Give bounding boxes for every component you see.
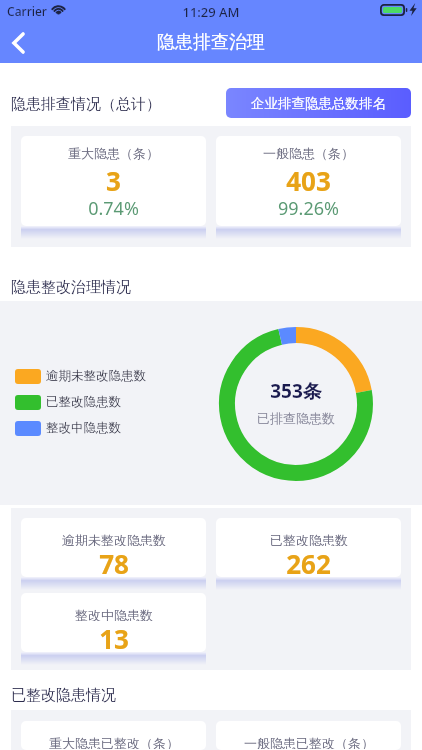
button[interactable]: 企业排查隐患总数排名	[226, 88, 411, 118]
staticText: 已整改隐患数	[270, 532, 348, 546]
staticText: 403	[286, 163, 331, 196]
staticText: 11:29 AM	[182, 3, 240, 21]
button[interactable]: 重大隐患已整改（条）	[21, 721, 206, 750]
staticText: 一般隐患（条）	[263, 145, 354, 161]
button[interactable]: 逾期未整改隐患数	[21, 518, 206, 577]
staticText: 重大隐患（条）	[68, 145, 159, 161]
staticText: 隐患排查情况（总计）	[11, 95, 161, 114]
staticText: 逾期未整改隐患数	[62, 532, 166, 546]
staticText: 已整改隐患情况	[11, 686, 116, 705]
button[interactable]: 已整改隐患数	[216, 518, 401, 577]
button[interactable]: 重大隐患（条）	[21, 136, 206, 226]
staticText: Carrier	[7, 3, 47, 19]
button[interactable]: 一般隐患（条）	[216, 136, 401, 226]
staticText: 已排查隐患数	[257, 410, 335, 426]
staticText: 重大隐患已整改（条）	[49, 735, 179, 749]
staticText: 已整改隐患数	[46, 394, 121, 410]
staticText: 一般隐患已整改（条）	[244, 735, 374, 749]
staticText: 353条	[270, 378, 322, 404]
staticText: 13	[99, 621, 129, 652]
staticText: 78	[99, 546, 129, 577]
staticText: 整改中隐患数	[46, 420, 121, 436]
staticText: 企业排查隐患总数排名	[251, 95, 386, 112]
staticText: 逾期未整改隐患数	[46, 368, 146, 384]
button[interactable]: 一般隐患已整改（条）	[216, 721, 401, 750]
staticText: 隐患排查治理	[157, 31, 265, 54]
button[interactable]: Back	[0, 22, 36, 63]
staticText: 0.74%	[88, 196, 139, 221]
staticText: 隐患整改治理情况	[11, 278, 131, 297]
staticText: 262	[286, 546, 331, 577]
staticText: 3	[106, 163, 121, 196]
button[interactable]: 整改中隐患数	[21, 593, 206, 652]
staticText: 整改中隐患数	[75, 607, 153, 621]
staticText: 99.26%	[278, 196, 339, 221]
